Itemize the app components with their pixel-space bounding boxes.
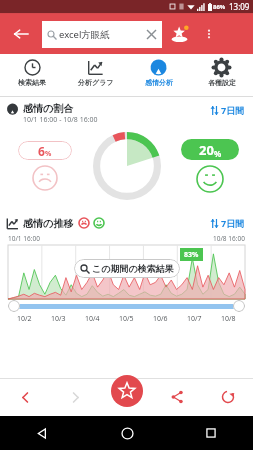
staticText: 10/7 <box>187 314 202 324</box>
button[interactable]: Negative filter <box>78 217 90 229</box>
staticText: 7日間 <box>221 217 245 229</box>
staticText: 86% <box>213 3 226 11</box>
staticText: 10/8 16:00 <box>213 234 245 243</box>
staticText: 7日間 <box>221 104 245 116</box>
button[interactable]: 7日間 <box>208 215 247 231</box>
staticText: 10/5 <box>119 314 134 324</box>
staticText: 10/8 <box>221 314 236 324</box>
staticText: 6 <box>38 143 45 159</box>
button[interactable]: 感情分析 <box>127 54 190 96</box>
staticText: 各種設定 <box>208 78 236 87</box>
staticText: % <box>45 149 52 159</box>
staticText: 83% <box>184 250 199 260</box>
staticText: 10/3 <box>51 314 66 324</box>
button[interactable]: Clear search <box>140 21 162 48</box>
button[interactable]: 各種設定 <box>190 54 253 96</box>
button[interactable]: Forward <box>50 378 100 416</box>
staticText: 10/2 <box>17 314 32 324</box>
button[interactable]: Range start <box>8 300 20 312</box>
button[interactable]: 7日間 <box>208 102 247 118</box>
button[interactable]: Range end <box>233 300 245 312</box>
button[interactable]: Positive filter <box>93 217 105 229</box>
staticText: 感情分析 <box>145 78 173 87</box>
staticText: 20 <box>199 141 214 159</box>
staticText: 感情の推移 <box>23 217 74 230</box>
staticText: 10/1 16:00 - 10/8 16:00 <box>23 115 98 125</box>
button[interactable]: excel方眼紙 <box>42 21 162 48</box>
staticText: 10/1 16:00 <box>8 234 40 243</box>
staticText: 分析グラフ <box>78 78 114 87</box>
button[interactable]: Back <box>0 14 42 54</box>
staticText: 検索結果 <box>18 78 46 87</box>
staticText: 13:09 <box>229 1 250 12</box>
button[interactable]: 20 <box>181 139 239 160</box>
staticText: 10/4 <box>85 314 100 324</box>
button[interactable]: Refresh <box>202 378 253 416</box>
staticText: excel方眼紙 <box>59 28 110 41</box>
staticText: 10/6 <box>153 314 168 324</box>
button[interactable]: この期間の検索結果 <box>74 259 180 278</box>
button[interactable]: 83% <box>180 248 203 261</box>
button[interactable]: More options <box>196 14 222 54</box>
button[interactable]: 6 <box>18 141 72 160</box>
staticText: % <box>214 148 222 159</box>
button[interactable]: Favorite <box>111 375 143 407</box>
staticText: この期間の検索結果 <box>92 263 174 274</box>
button[interactable]: Favorites <box>162 14 196 54</box>
staticText: 感情の割合 <box>23 102 74 115</box>
button[interactable]: Back <box>0 378 50 416</box>
button[interactable]: Share <box>151 378 202 416</box>
button[interactable]: 検索結果 <box>0 54 64 96</box>
button[interactable]: 分析グラフ <box>64 54 127 96</box>
